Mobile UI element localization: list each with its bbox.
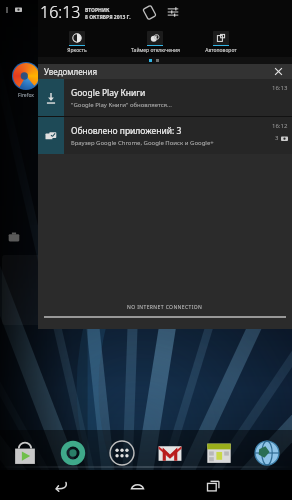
staticText: 16:13 — [40, 1, 81, 23]
staticText: NO INTERNET CONNECTION — [127, 304, 203, 311]
staticText: Google Play Книги — [71, 87, 146, 99]
button[interactable]: Recents — [198, 471, 228, 499]
staticText: mMUSIC — [269, 85, 288, 91]
staticText: Обновлено приложений: 3 — [71, 125, 182, 137]
staticText: Автоповорот — [205, 47, 237, 54]
staticText: ВТОРНИК — [85, 7, 110, 14]
button[interactable]: Таймер отключения — [116, 31, 194, 54]
button[interactable]: Firefox — [6, 62, 46, 102]
button[interactable]: Gmail — [155, 438, 185, 468]
staticText: Яркость — [67, 47, 87, 54]
staticText: 3 — [275, 134, 279, 142]
button[interactable]: Google Play Книги — [38, 79, 292, 116]
staticText: 16:12 — [272, 122, 288, 130]
button[interactable]: Обновлено приложений: 3 — [38, 117, 292, 154]
button[interactable]: Calendar — [204, 438, 234, 468]
button[interactable]: App — [264, 60, 292, 91]
staticText: Браузер Google Chrome, Google Поиск и Go… — [71, 139, 214, 147]
button[interactable]: Автоповорот — [194, 31, 248, 54]
staticText: Уведомления — [44, 66, 98, 77]
button[interactable]: Rotation — [141, 4, 157, 20]
button[interactable]: Яркость — [38, 31, 116, 54]
button[interactable]: Folder — [7, 230, 21, 244]
button[interactable]: Settings — [165, 4, 181, 20]
button[interactable]: Play Store — [10, 438, 40, 468]
staticText: 16:13 — [272, 84, 288, 92]
staticText: "Google Play Книги" обновляется... — [71, 101, 172, 109]
button[interactable]: All apps — [107, 438, 137, 468]
button[interactable]: Browser Ring — [58, 438, 88, 468]
staticText: Firefox — [18, 92, 34, 99]
button[interactable]: Home — [122, 471, 152, 499]
button[interactable]: Back — [46, 471, 76, 499]
staticText: Таймер отключения — [131, 47, 180, 54]
button[interactable]: Browser — [252, 438, 282, 468]
button[interactable]: Clear notifications — [264, 64, 292, 79]
staticText: 8 ОКТЯБРЯ 2013 Г. — [85, 14, 131, 21]
